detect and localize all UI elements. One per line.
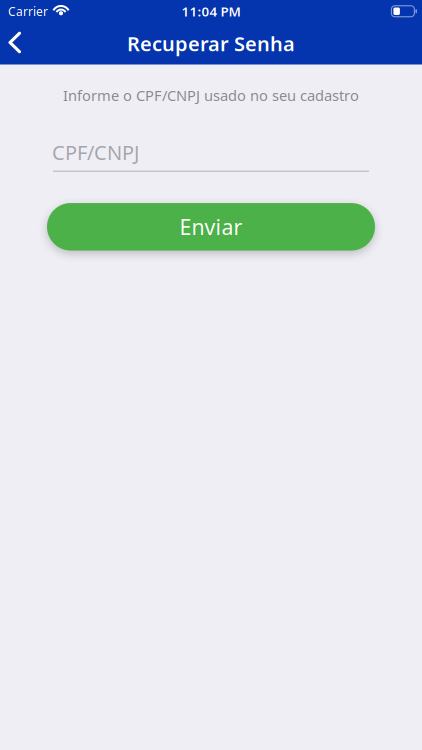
staticText: 11:04 PM (181, 2, 240, 20)
staticText: Informe o CPF/CNPJ usado no seu cadastro (63, 85, 359, 105)
button[interactable]: CPF/CNPJ (0, 139, 422, 172)
button[interactable]: Back (0, 22, 35, 64)
button[interactable]: Enviar (47, 203, 375, 250)
staticText: CPF/CNPJ (52, 139, 139, 166)
staticText: Recuperar Senha (127, 30, 295, 57)
staticText: Carrier (8, 3, 48, 19)
staticText: Enviar (179, 213, 242, 241)
